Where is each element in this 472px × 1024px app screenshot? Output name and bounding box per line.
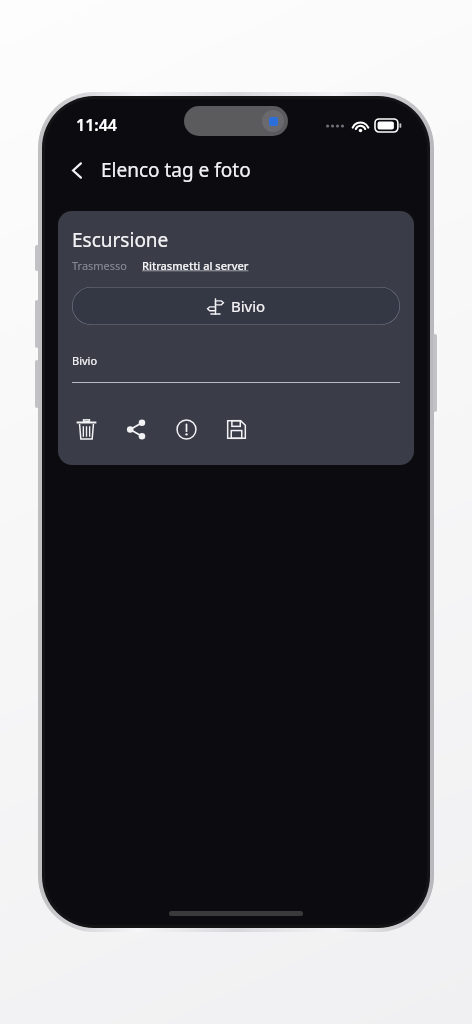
staticText: Ritrasmetti al server (142, 258, 249, 273)
button[interactable]: Share (122, 415, 150, 443)
button[interactable]: Info (172, 415, 200, 443)
button[interactable]: Bivio (72, 287, 400, 325)
button[interactable]: Back (57, 150, 97, 190)
staticText: Escursione (72, 227, 169, 253)
button[interactable]: Ritrasmetti al server (142, 258, 249, 273)
staticText: Trasmesso (72, 258, 128, 273)
button[interactable]: Delete (72, 415, 100, 443)
button[interactable]: Save (222, 415, 250, 443)
staticText: Elenco tag e foto (101, 157, 251, 183)
staticText: Bivio (72, 353, 98, 368)
staticText: 11:44 (76, 114, 118, 136)
staticText: Bivio (231, 296, 266, 316)
